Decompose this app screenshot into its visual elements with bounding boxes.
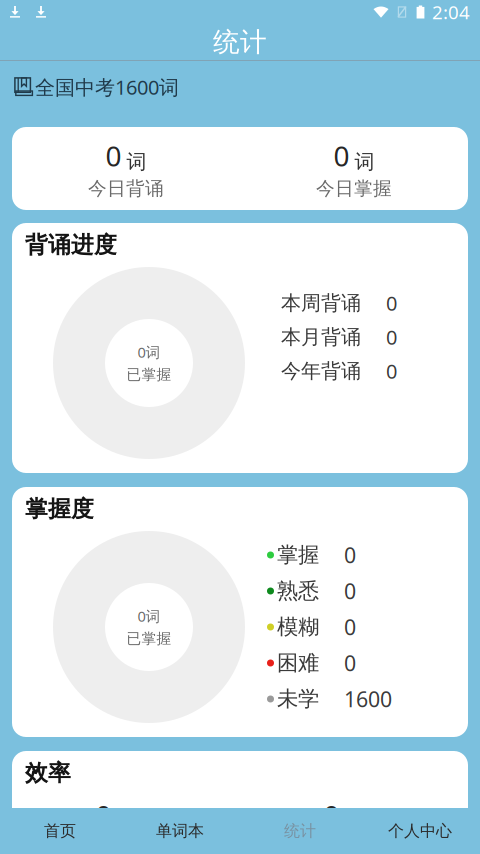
staticText: 全国中考1600词: [35, 74, 179, 100]
staticText: 0: [344, 613, 356, 641]
staticText: 背诵进度: [25, 231, 117, 259]
staticText: 0: [333, 137, 349, 174]
staticText: 熟悉: [277, 578, 319, 604]
button[interactable]: 首页: [0, 808, 120, 854]
staticText: 效率: [25, 759, 71, 787]
staticText: 0: [323, 796, 339, 834]
staticText: 模糊: [277, 614, 319, 640]
staticText: 0: [344, 649, 356, 677]
staticText: 今年背诵: [281, 359, 361, 383]
staticText: 掌握: [277, 542, 319, 568]
staticText: 0词: [137, 606, 160, 626]
staticText: 今日掌握: [316, 177, 392, 200]
staticText: 0: [386, 290, 397, 316]
button[interactable]: 单词本: [120, 808, 240, 854]
staticText: 0: [95, 796, 111, 834]
staticText: 统计: [284, 821, 316, 841]
staticText: 掌握度: [25, 495, 94, 523]
staticText: 词: [354, 150, 374, 174]
staticText: 今日背诵: [88, 177, 164, 200]
staticText: 统计: [213, 26, 267, 58]
staticText: 本周背诵: [281, 291, 361, 315]
staticText: 0: [344, 541, 356, 569]
staticText: 未学: [277, 686, 319, 712]
staticText: 单词本: [156, 821, 204, 841]
staticText: 词: [126, 150, 146, 174]
staticText: 已掌握: [126, 366, 171, 384]
staticText: 今日用时: [88, 837, 164, 854]
staticText: 0词: [137, 342, 160, 362]
button[interactable]: 统计: [240, 808, 360, 854]
staticText: 0: [344, 577, 356, 605]
staticText: 1600: [344, 685, 392, 713]
staticText: 首页: [44, 821, 76, 841]
staticText: 已掌握: [126, 630, 171, 648]
staticText: 0: [105, 137, 121, 174]
staticText: 2:04: [432, 0, 470, 24]
staticText: 困难: [277, 650, 319, 676]
staticText: 个人中心: [388, 821, 452, 841]
staticText: 0: [386, 324, 397, 350]
staticText: 0: [386, 358, 397, 384]
button[interactable]: 个人中心: [360, 808, 480, 854]
staticText: 本月背诵: [281, 325, 361, 349]
